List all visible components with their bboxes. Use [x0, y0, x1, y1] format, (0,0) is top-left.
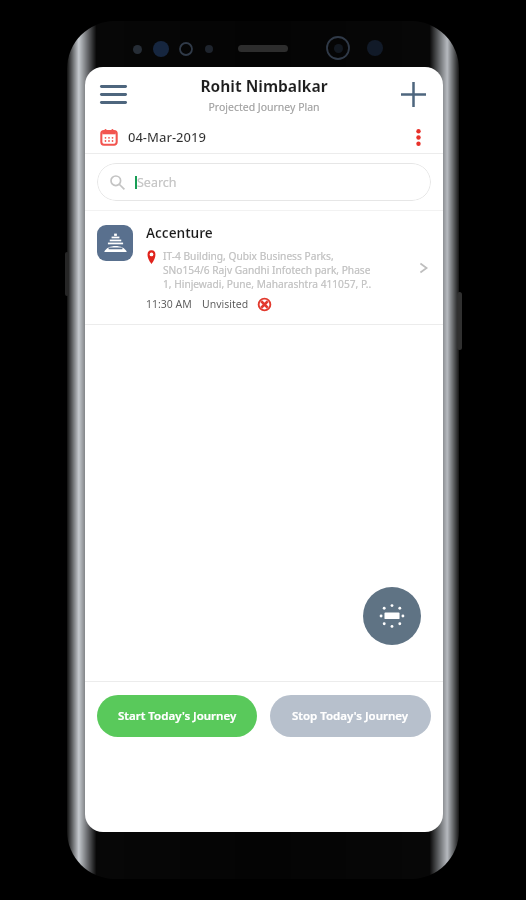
staticText: Start Today's Journey — [118, 708, 237, 724]
button[interactable]: More options — [401, 121, 435, 153]
staticText: Stop Today's Journey — [292, 708, 409, 724]
staticText: 04-Mar-2019 — [128, 128, 206, 146]
staticText: Projected Journey Plan — [208, 100, 320, 114]
button[interactable]: Search — [97, 163, 431, 201]
staticText: IT-4 Building, Qubix Business Parks, SNo… — [163, 249, 372, 291]
button[interactable]: Pick date — [93, 121, 125, 153]
staticText: 11:30 AM — [146, 297, 192, 311]
button[interactable]: Start Today's Journey — [97, 695, 257, 737]
button[interactable]: Stop Today's Journey — [270, 695, 431, 737]
staticText: Search — [137, 174, 177, 191]
staticText: Accenture — [146, 224, 213, 242]
button[interactable]: Optimize route — [363, 587, 421, 645]
staticText: Rohit Nimbalkar — [200, 75, 328, 96]
button[interactable]: Accenture — [85, 211, 443, 324]
staticText: Unvisited — [202, 297, 249, 311]
button[interactable]: Add — [391, 72, 435, 116]
button[interactable]: Menu — [91, 72, 135, 116]
